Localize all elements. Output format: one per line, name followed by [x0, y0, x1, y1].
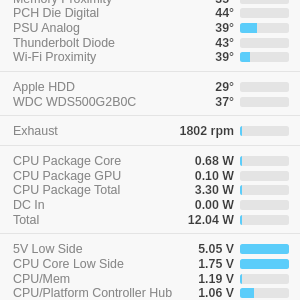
button[interactable]: PCH Die Digital	[0, 5, 300, 20]
button[interactable]: CPU Core Low Side	[0, 256, 300, 271]
staticText: 29°	[134, 80, 234, 94]
button[interactable]: Wi-Fi Proximity	[0, 49, 300, 64]
button[interactable]: CPU Package Total	[0, 182, 300, 197]
staticText: Total	[13, 213, 40, 227]
button[interactable]: Memory Proximity	[0, 0, 300, 6]
button[interactable]: WDC WDS500G2B0C	[0, 94, 300, 109]
staticText: CPU Package Total	[13, 183, 121, 197]
staticText: 39°	[134, 50, 234, 64]
staticText: Memory Proximity	[13, 0, 113, 6]
staticText: 5.05 V	[134, 242, 234, 256]
staticText: 43°	[134, 36, 234, 50]
staticText: PSU Analog	[13, 21, 80, 35]
staticText: CPU/Mem	[13, 272, 71, 286]
staticText: 39°	[134, 21, 234, 35]
staticText: 3.30 W	[134, 183, 234, 197]
staticText: WDC WDS500G2B0C	[13, 95, 137, 109]
staticText: 1.75 V	[134, 257, 234, 271]
staticText: DC In	[13, 198, 45, 212]
button[interactable]: Total	[0, 212, 300, 227]
staticText: 37°	[134, 95, 234, 109]
button[interactable]: Thunderbolt Diode	[0, 35, 300, 50]
button[interactable]: CPU Package GPU	[0, 168, 300, 183]
button[interactable]: Apple HDD	[0, 79, 300, 94]
staticText: PCH Die Digital	[13, 6, 100, 20]
staticText: 44°	[134, 6, 234, 20]
staticText: Exhaust	[13, 124, 58, 138]
staticText: 1.19 V	[134, 272, 234, 286]
staticText: 0.68 W	[134, 154, 234, 168]
button[interactable]: Exhaust	[0, 123, 300, 138]
button[interactable]: 5V Low Side	[0, 241, 300, 256]
staticText: Apple HDD	[13, 80, 75, 94]
staticText: 0.10 W	[134, 169, 234, 183]
button[interactable]: PSU Analog	[0, 20, 300, 35]
button[interactable]: CPU/Mem	[0, 271, 300, 286]
staticText: CPU/Platform Controller Hub	[13, 286, 173, 300]
staticText: 0.00 W	[134, 198, 234, 212]
button[interactable]: CPU/Platform Controller Hub	[0, 285, 300, 300]
staticText: 5V Low Side	[13, 242, 83, 256]
staticText: 12.04 W	[134, 213, 234, 227]
staticText: 35°	[134, 0, 234, 6]
staticText: Wi-Fi Proximity	[13, 50, 97, 64]
staticText: CPU Package GPU	[13, 169, 122, 183]
button[interactable]: CPU Package Core	[0, 153, 300, 168]
button[interactable]: DC In	[0, 197, 300, 212]
staticText: CPU Package Core	[13, 154, 122, 168]
staticText: 1.06 V	[134, 286, 234, 300]
staticText: Thunderbolt Diode	[13, 36, 115, 50]
staticText: CPU Core Low Side	[13, 257, 124, 271]
staticText: 1802 rpm	[134, 124, 234, 138]
